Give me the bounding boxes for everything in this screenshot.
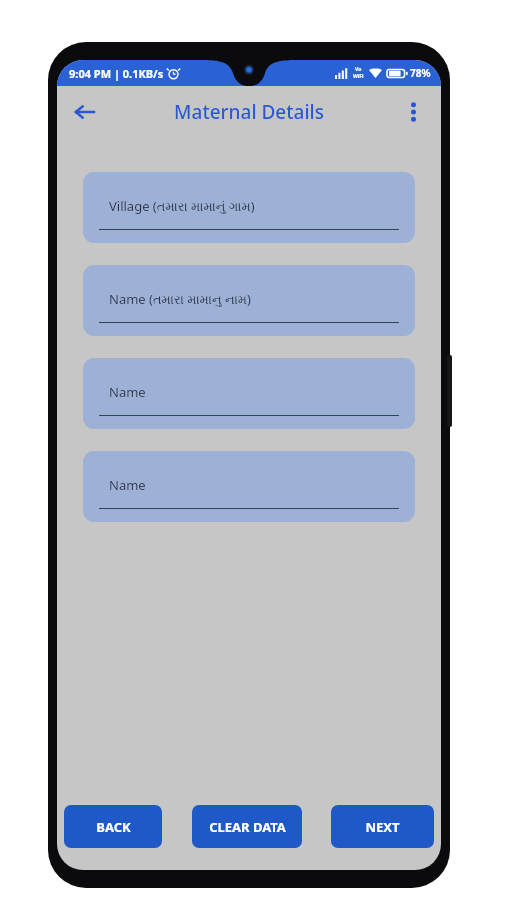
staticText: Village (તમારા મામાનું ગામ) (109, 197, 255, 215)
staticText: 9:04 PM | 0.1KB/s (69, 66, 164, 81)
button[interactable]: Name (તમારા મામાનુ નામ) (83, 265, 415, 336)
staticText: 78% (410, 66, 431, 80)
staticText: BACK (96, 818, 131, 836)
button[interactable]: BACK (64, 805, 162, 848)
staticText: CLEAR DATA (209, 818, 286, 836)
button[interactable]: CLEAR DATA (192, 805, 302, 848)
staticText: Vo (355, 66, 362, 73)
staticText: Name (તમારા મામાનુ નામ) (109, 290, 251, 308)
staticText: Name (109, 476, 146, 494)
button[interactable]: Name (83, 358, 415, 429)
staticText: Name (109, 383, 146, 401)
button[interactable]: Village (તમારા મામાનું ગામ) (83, 172, 415, 243)
button[interactable]: Back (63, 90, 107, 134)
staticText: NEXT (365, 818, 400, 836)
button[interactable]: Name (83, 451, 415, 522)
staticText: WiFi (353, 73, 364, 80)
button[interactable]: NEXT (331, 805, 434, 848)
staticText: Maternal Details (174, 99, 324, 125)
button[interactable]: More options (391, 90, 435, 134)
